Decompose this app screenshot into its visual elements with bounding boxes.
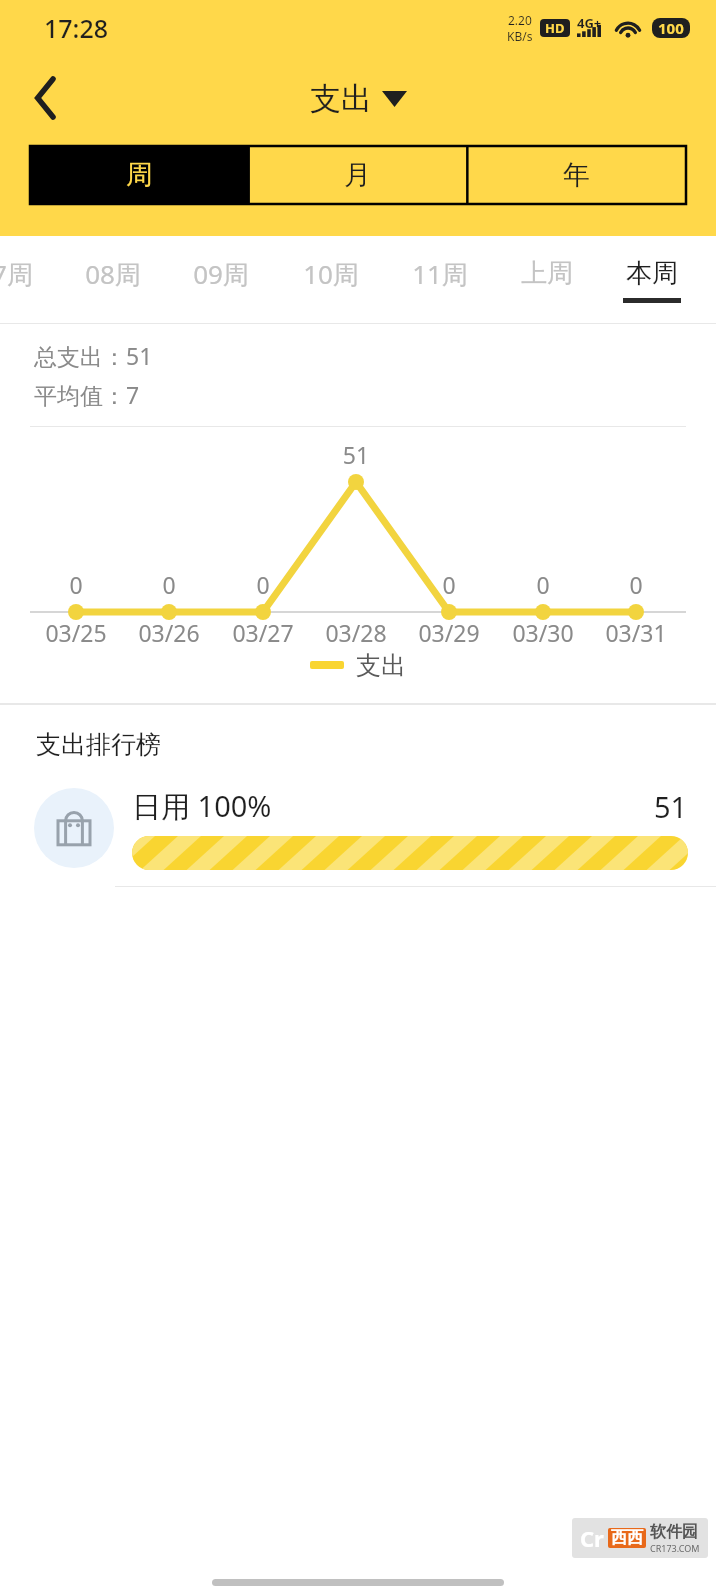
staticText: 0: [513, 569, 573, 600]
staticText: 年: [563, 158, 590, 192]
staticText: 支出排行榜: [36, 729, 161, 760]
button[interactable]: 上周: [495, 236, 599, 324]
staticText: 月: [344, 158, 371, 192]
staticText: 总支出：51: [34, 340, 153, 371]
button[interactable]: 年: [467, 146, 686, 204]
staticText: 0: [139, 569, 199, 600]
staticText: 日用 100%: [132, 786, 272, 826]
button[interactable]: Back: [18, 70, 74, 126]
button[interactable]: 08周: [61, 236, 165, 324]
staticText: 03/26: [121, 617, 217, 648]
button[interactable]: 日用 100%: [0, 786, 716, 870]
staticText: 4G+: [577, 14, 602, 32]
staticText: HD: [545, 19, 565, 37]
staticText: 7周: [0, 256, 33, 292]
staticText: 51: [654, 787, 688, 826]
staticText: 09周: [193, 256, 249, 292]
button[interactable]: 7周: [0, 236, 64, 324]
button[interactable]: 本周: [600, 236, 704, 324]
button[interactable]: 09周: [169, 236, 273, 324]
staticText: 0: [419, 569, 479, 600]
button[interactable]: 周: [30, 146, 248, 204]
staticText: 0: [46, 569, 106, 600]
staticText: 03/25: [28, 617, 124, 648]
button[interactable]: 月: [248, 146, 467, 204]
staticText: 平均值：7: [34, 379, 140, 410]
staticText: 支出: [356, 650, 406, 681]
staticText: 17:28: [44, 11, 109, 45]
staticText: 上周: [521, 257, 573, 290]
staticText: 0: [606, 569, 666, 600]
staticText: Cr: [580, 1523, 604, 1553]
staticText: 10周: [303, 256, 359, 292]
staticText: KB/s: [507, 28, 533, 44]
staticText: 03/31: [588, 617, 684, 648]
staticText: 2.20: [508, 12, 532, 28]
staticText: 03/30: [495, 617, 591, 648]
button[interactable]: 支出: [304, 73, 413, 124]
staticText: 本周: [626, 257, 678, 290]
staticText: 51: [326, 439, 386, 470]
staticText: 03/29: [401, 617, 497, 648]
button[interactable]: 10周: [279, 236, 383, 324]
staticText: 软件园: [650, 1522, 698, 1542]
staticText: 周: [126, 158, 153, 192]
staticText: 03/27: [215, 617, 311, 648]
staticText: 西西: [611, 1528, 643, 1548]
staticText: 03/28: [308, 617, 404, 648]
staticText: 11周: [412, 256, 468, 292]
staticText: 0: [233, 569, 293, 600]
staticText: 08周: [85, 256, 141, 292]
button[interactable]: 11周: [388, 236, 492, 324]
staticText: 100: [658, 18, 684, 38]
staticText: 支出: [310, 79, 372, 118]
staticText: CR173.COM: [650, 1542, 700, 1554]
